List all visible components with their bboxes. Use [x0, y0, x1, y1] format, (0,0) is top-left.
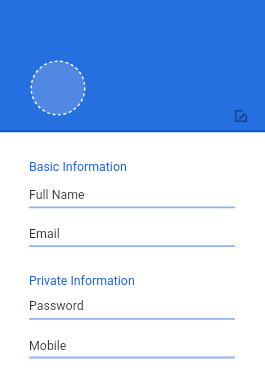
staticText: Password	[29, 298, 84, 313]
staticText: Basic Information	[29, 159, 127, 174]
staticText: Mobile	[29, 338, 67, 353]
staticText: Email	[29, 226, 60, 241]
button[interactable]: Change profile photo	[30, 60, 86, 116]
staticText: Private Information	[29, 273, 135, 288]
button[interactable]: Edit profile	[231, 106, 251, 126]
staticText: Full Name	[29, 187, 85, 202]
